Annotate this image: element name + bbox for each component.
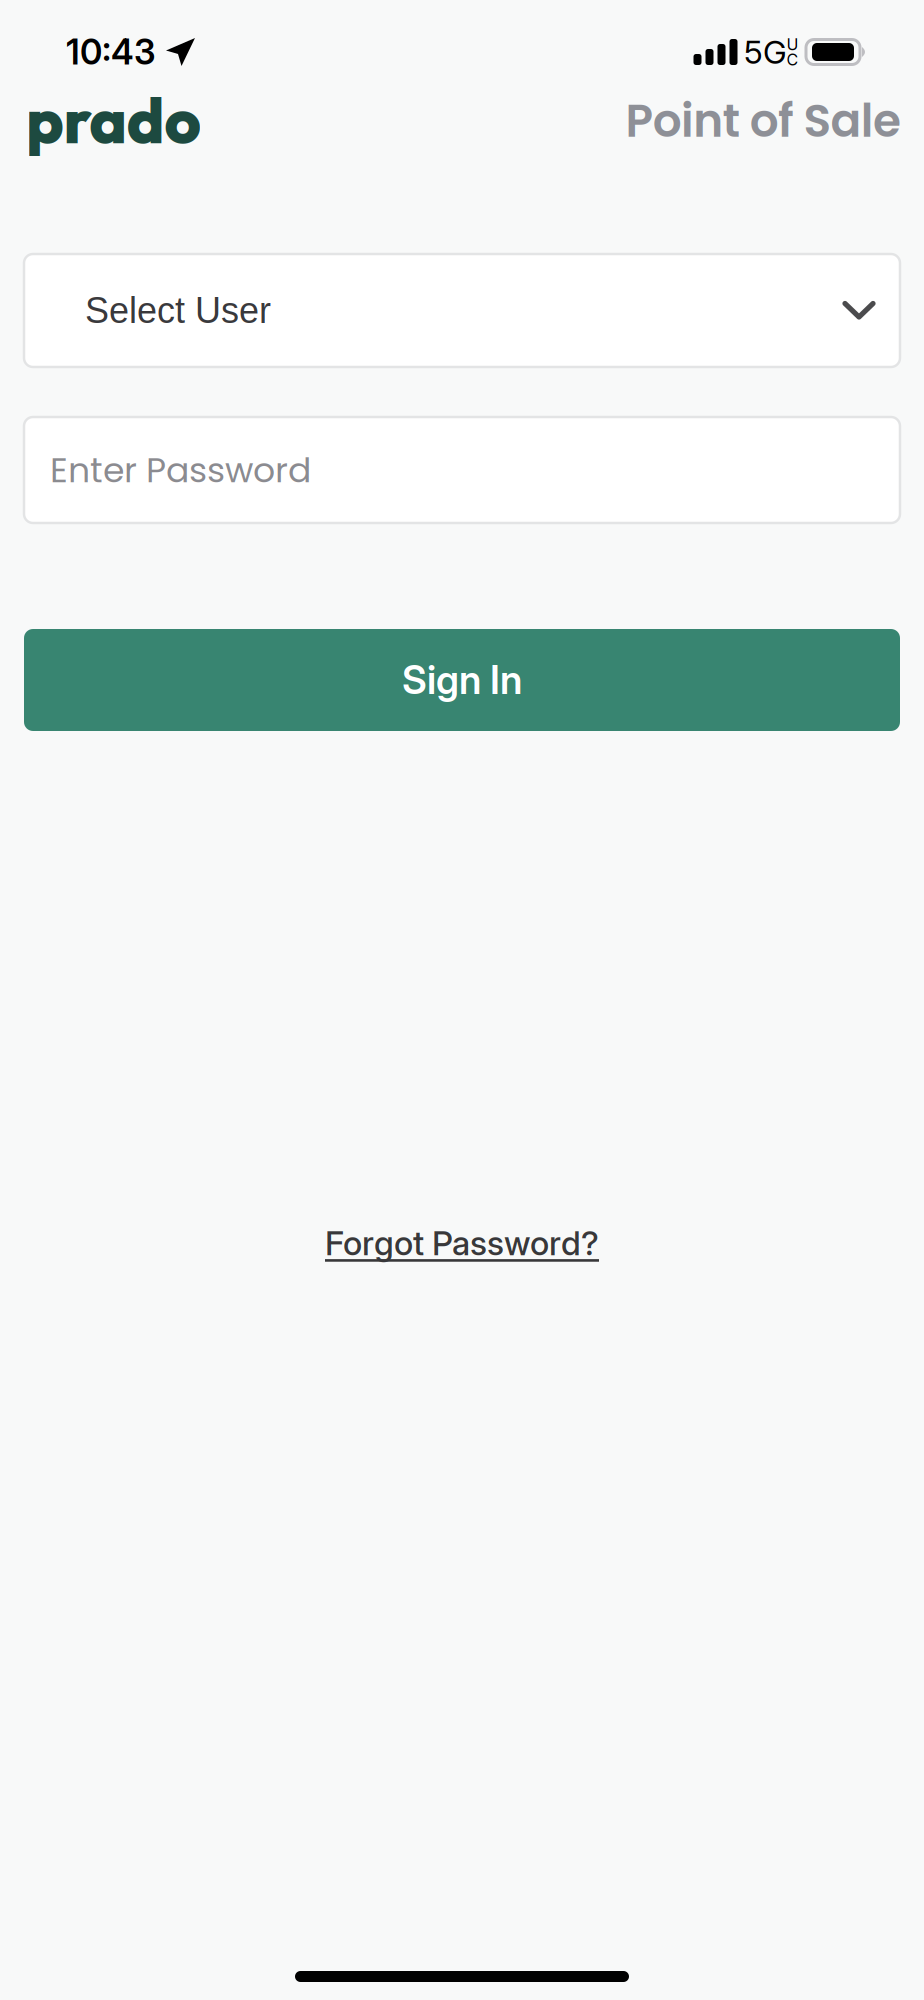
staticText: 5G: [744, 33, 787, 71]
staticText: Enter Password: [50, 446, 311, 494]
staticText: Point of Sale: [626, 89, 901, 153]
button[interactable]: Forgot Password?: [325, 1217, 599, 1269]
staticText: Select User: [85, 290, 271, 331]
button[interactable]: Sign In: [24, 629, 900, 731]
staticText: Forgot Password?: [325, 1223, 599, 1263]
staticText: C: [786, 50, 798, 69]
button[interactable]: Select User: [24, 254, 900, 367]
staticText: Sign In: [402, 657, 522, 703]
staticText: 10:43: [66, 31, 156, 73]
button[interactable]: Enter Password: [24, 417, 900, 523]
staticText: prado: [26, 80, 200, 159]
staticText: U: [786, 35, 798, 54]
